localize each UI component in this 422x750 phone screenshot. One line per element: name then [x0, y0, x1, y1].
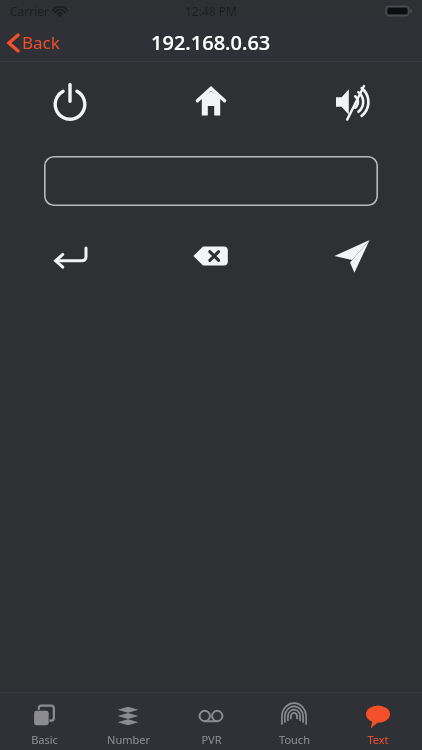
- button[interactable]: Number: [89, 693, 167, 750]
- button[interactable]: Mute: [304, 76, 400, 128]
- staticText: Touch: [279, 732, 310, 747]
- button[interactable]: PVR: [172, 693, 250, 750]
- staticText: Text: [367, 732, 389, 747]
- staticText: 192.168.0.63: [151, 29, 271, 56]
- button[interactable]: Backspace: [163, 230, 259, 282]
- staticText: PVR: [201, 732, 222, 747]
- button[interactable]: Back: [0, 27, 70, 58]
- staticText: Number: [107, 732, 150, 747]
- button[interactable]: Power: [22, 76, 118, 128]
- staticText: Carrier: [10, 3, 50, 19]
- staticText: 12:48 PM: [185, 3, 237, 19]
- staticText: Back: [22, 31, 60, 54]
- button[interactable]: [44, 156, 378, 206]
- button[interactable]: Send: [304, 230, 400, 282]
- button[interactable]: Basic: [5, 693, 83, 750]
- staticText: Basic: [31, 732, 58, 747]
- button[interactable]: Text: [339, 693, 417, 750]
- button[interactable]: Return: [22, 230, 118, 282]
- button[interactable]: Home: [163, 76, 259, 128]
- button[interactable]: Touch: [255, 693, 333, 750]
